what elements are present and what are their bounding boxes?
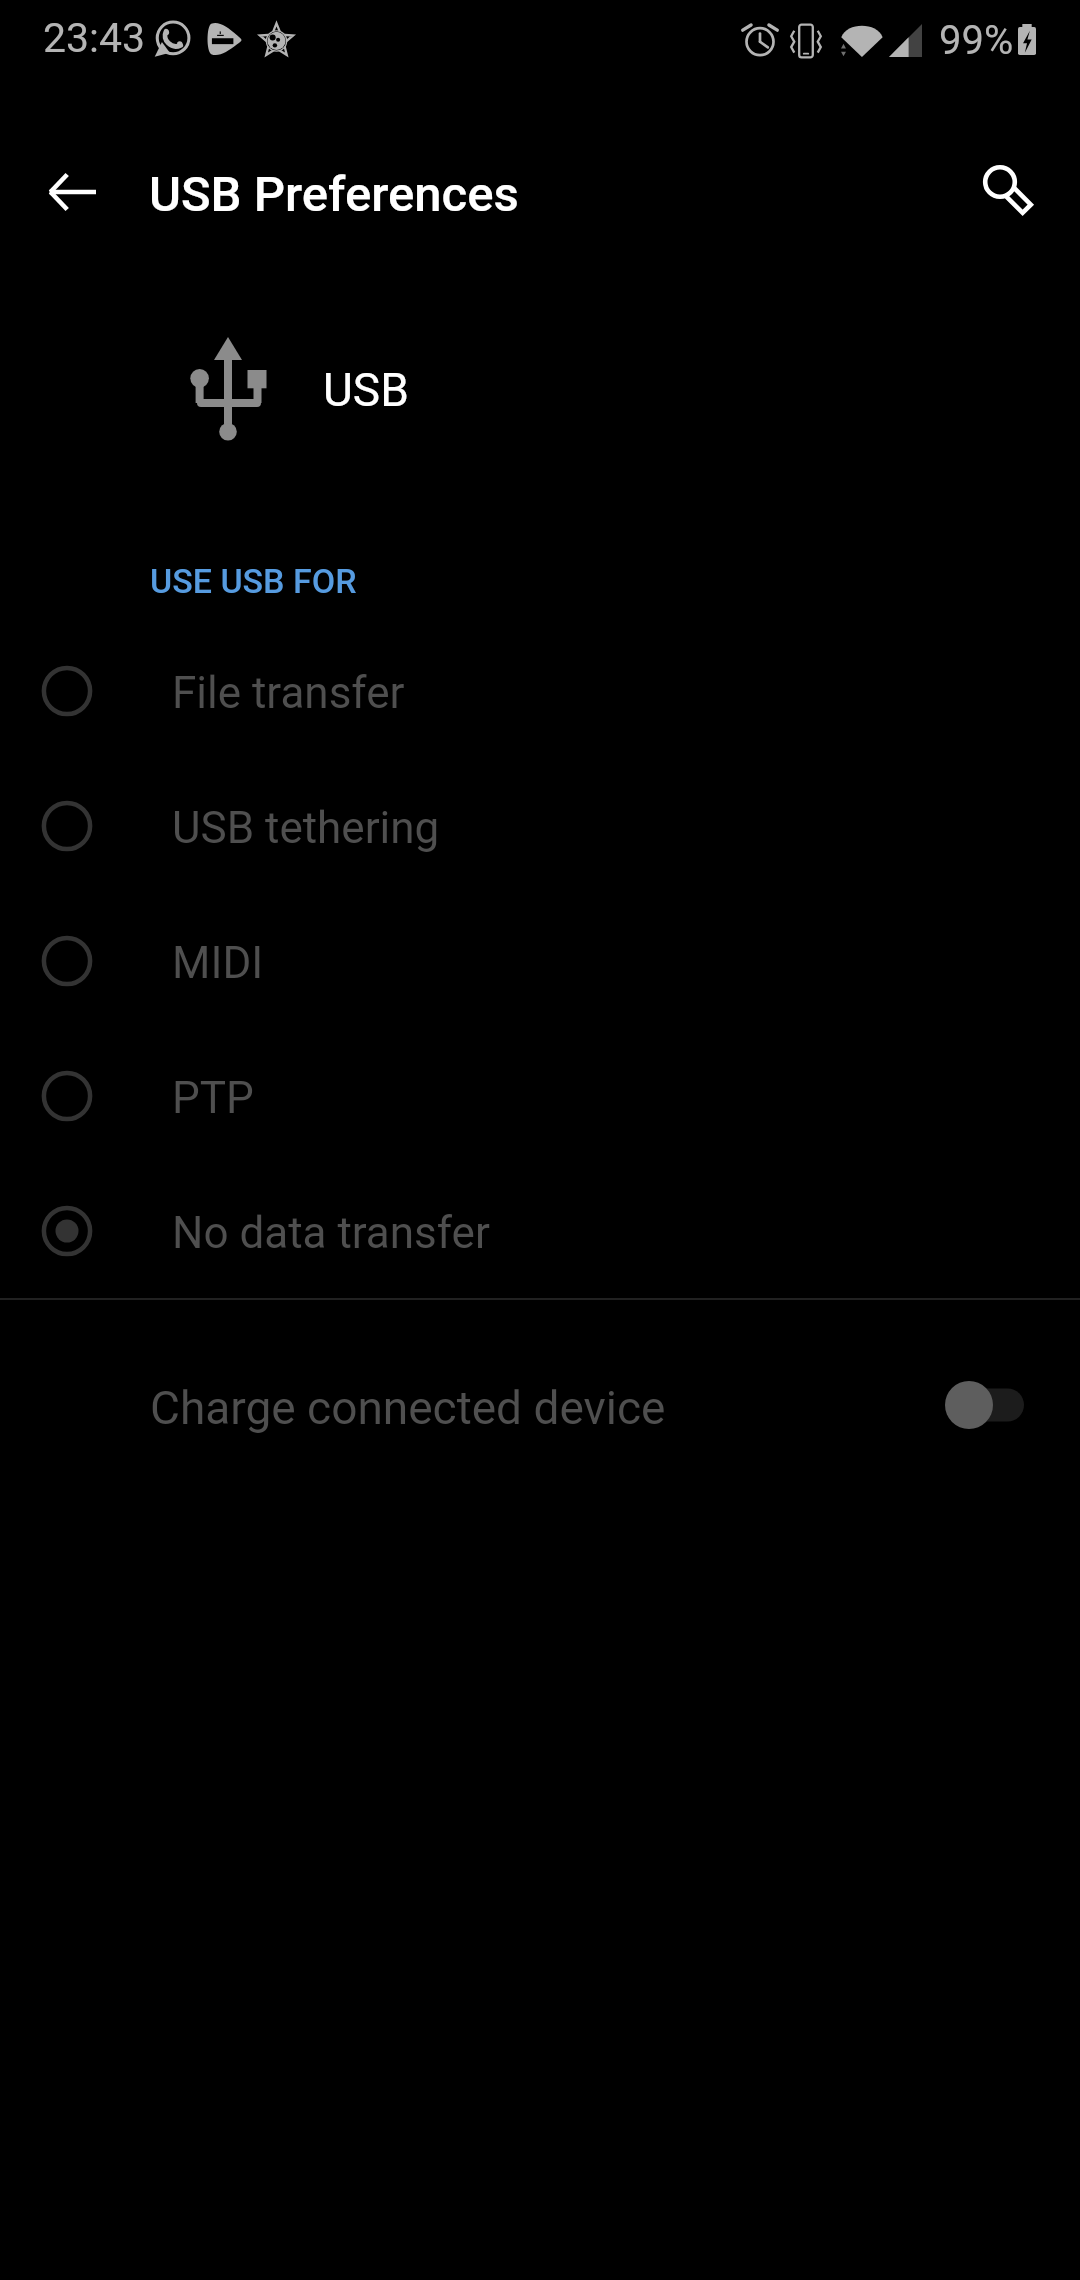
staticText: No data transfer xyxy=(172,1207,490,1259)
button[interactable]: MIDI xyxy=(0,895,1080,1030)
button[interactable]: No data transfer xyxy=(0,1165,1080,1300)
button[interactable]: Navigate up xyxy=(24,144,120,240)
staticText: PTP xyxy=(172,1072,254,1124)
button[interactable]: File transfer xyxy=(0,625,1080,760)
staticText: 99% xyxy=(939,17,1014,64)
staticText: 23:43 xyxy=(43,14,146,62)
staticText: USB xyxy=(323,363,409,417)
staticText: Charge connected device xyxy=(150,1381,666,1435)
staticText: MIDI xyxy=(172,937,264,989)
button[interactable]: PTP xyxy=(0,1030,1080,1165)
staticText: USB Preferences xyxy=(149,166,519,223)
button[interactable]: USB tethering xyxy=(0,760,1080,895)
button[interactable]: Charge connected device xyxy=(0,1300,1080,1486)
staticText: USB tethering xyxy=(172,802,440,854)
button[interactable]: Search xyxy=(952,144,1048,240)
staticText: File transfer xyxy=(172,667,405,719)
staticText: USE USB FOR xyxy=(150,561,357,601)
